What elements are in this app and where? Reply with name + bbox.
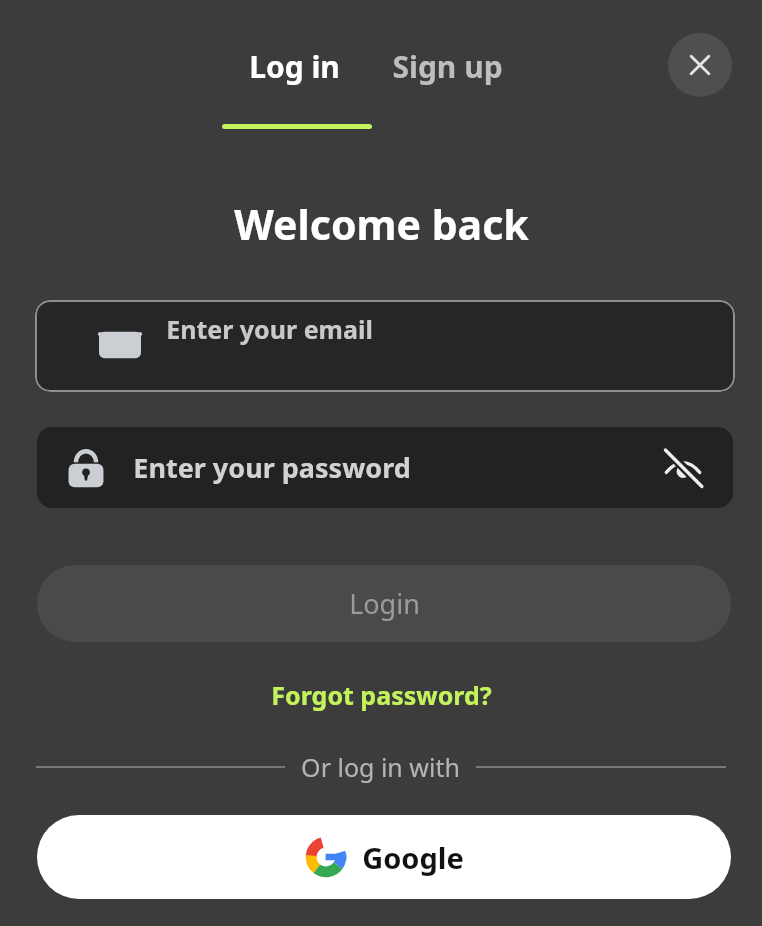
button[interactable]: Close xyxy=(668,33,732,97)
staticText: Enter your email xyxy=(166,312,373,346)
button[interactable]: Forgot password? xyxy=(263,674,500,716)
staticText: Or log in with xyxy=(301,750,460,784)
staticText: Google xyxy=(362,838,464,877)
staticText: Sign up xyxy=(392,46,503,87)
staticText: Log in xyxy=(249,46,340,87)
button[interactable]: Login xyxy=(37,565,731,642)
button[interactable]: Sign up xyxy=(390,44,505,89)
staticText: Enter your password xyxy=(133,449,411,486)
button[interactable]: Google xyxy=(37,815,731,899)
button[interactable]: Show password xyxy=(657,442,709,494)
button[interactable]: Log in xyxy=(247,44,342,89)
staticText: Login xyxy=(349,585,420,622)
button[interactable]: Enter your email xyxy=(35,300,735,392)
staticText: Welcome back xyxy=(234,196,529,252)
button[interactable]: Enter your password xyxy=(37,427,733,508)
staticText: Forgot password? xyxy=(271,678,492,712)
